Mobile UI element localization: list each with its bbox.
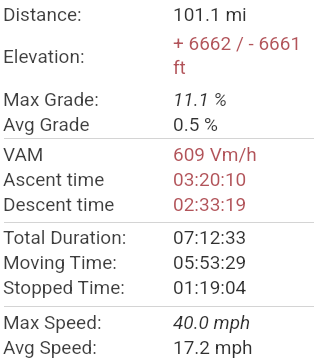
staticText: Elevation:: [3, 45, 173, 67]
button[interactable]: Avg Speed:: [0, 334, 318, 359]
button[interactable]: Descent time: [0, 191, 318, 216]
button[interactable]: Distance:: [0, 1, 318, 26]
staticText: Max Grade:: [3, 88, 173, 110]
staticText: 03:20:10: [173, 168, 247, 190]
button[interactable]: Moving Time:: [0, 249, 318, 274]
staticText: 02:33:19: [173, 193, 247, 215]
staticText: Descent time: [3, 193, 173, 215]
button[interactable]: Ascent time: [0, 166, 318, 191]
staticText: Distance:: [3, 3, 173, 25]
staticText: Moving Time:: [3, 251, 173, 273]
staticText: Stopped Time:: [3, 276, 173, 298]
staticText: 11.1 %: [173, 88, 228, 110]
staticText: Max Speed:: [3, 311, 173, 333]
staticText: + 6662 / - 6661 ft: [173, 32, 312, 79]
button[interactable]: VAM: [0, 141, 318, 166]
button[interactable]: Avg Grade: [0, 111, 318, 136]
staticText: VAM: [3, 143, 173, 165]
staticText: Avg Grade: [3, 113, 173, 135]
button[interactable]: Max Grade:: [0, 86, 318, 111]
staticText: 17.2 mph: [173, 336, 253, 358]
staticText: 101.1 mi: [173, 3, 247, 25]
staticText: Avg Speed:: [3, 336, 173, 358]
staticText: Ascent time: [3, 168, 173, 190]
button[interactable]: Elevation:: [0, 26, 318, 86]
staticText: 05:53:29: [173, 251, 247, 273]
staticText: 07:12:33: [173, 226, 247, 248]
staticText: 01:19:04: [173, 276, 247, 298]
staticText: 0.5 %: [173, 113, 218, 135]
button[interactable]: Total Duration:: [0, 224, 318, 249]
button[interactable]: Max Speed:: [0, 309, 318, 334]
staticText: 40.0 mph: [173, 311, 251, 333]
staticText: Total Duration:: [3, 226, 173, 248]
staticText: 609 Vm/h: [173, 143, 257, 165]
button[interactable]: Stopped Time:: [0, 274, 318, 299]
